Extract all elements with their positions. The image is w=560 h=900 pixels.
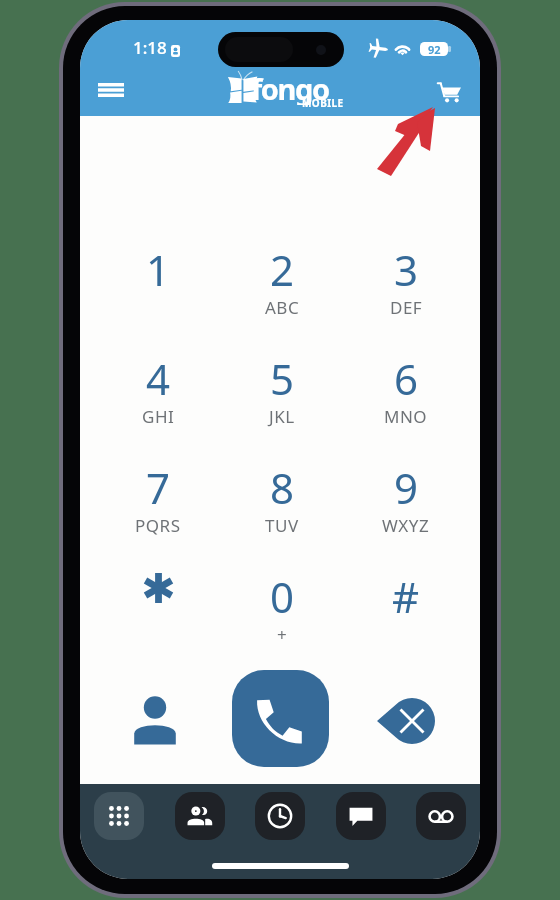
button[interactable]: Shopping cart (425, 69, 473, 115)
button[interactable]: Keypad (94, 792, 144, 840)
button[interactable]: Voicemail (416, 792, 466, 840)
button[interactable]: Backspace (343, 681, 468, 784)
staticText: fongo (251, 69, 329, 105)
button[interactable]: 8 (220, 463, 344, 572)
button[interactable]: 7 (96, 463, 220, 572)
button[interactable]: 0 (220, 572, 344, 681)
button[interactable]: 6 (344, 354, 468, 463)
button[interactable]: 1 (96, 245, 220, 354)
button[interactable]: 3 (344, 245, 468, 354)
staticText: 8 (270, 459, 295, 516)
staticText: TUV (265, 514, 299, 537)
staticText: DEF (390, 296, 423, 319)
staticText: # (392, 568, 420, 625)
button[interactable]: Messages (336, 792, 386, 840)
staticText: MOBILE (302, 96, 344, 110)
staticText: 1:18 (133, 36, 167, 59)
staticText: 0 (270, 568, 295, 625)
staticText: MNO (384, 405, 428, 428)
staticText: ABC (265, 296, 300, 319)
staticText: 92 (428, 42, 441, 56)
staticText: 5 (270, 350, 295, 407)
button[interactable]: Contacts (92, 681, 218, 784)
button[interactable]: Recents (255, 792, 305, 840)
staticText: 7 (146, 459, 171, 516)
staticText: + (277, 623, 288, 646)
button[interactable]: Contacts (175, 792, 225, 840)
staticText: 1 (146, 241, 171, 298)
button[interactable]: Call (232, 670, 329, 767)
staticText: 3 (394, 241, 419, 298)
button[interactable] (96, 572, 220, 681)
staticText: PQRS (135, 514, 181, 537)
button[interactable]: 9 (344, 463, 468, 572)
button[interactable]: 4 (96, 354, 220, 463)
staticText: 6 (394, 350, 419, 407)
staticText: 4 (146, 350, 171, 407)
button[interactable]: 2 (220, 245, 344, 354)
staticText: GHI (142, 405, 175, 428)
staticText: JKL (269, 405, 295, 428)
staticText: 2 (270, 241, 295, 298)
button[interactable]: # (344, 572, 468, 681)
button[interactable]: Menu (86, 65, 136, 115)
button[interactable]: 5 (220, 354, 344, 463)
staticText: 9 (394, 459, 419, 516)
staticText: WXYZ (382, 514, 430, 537)
